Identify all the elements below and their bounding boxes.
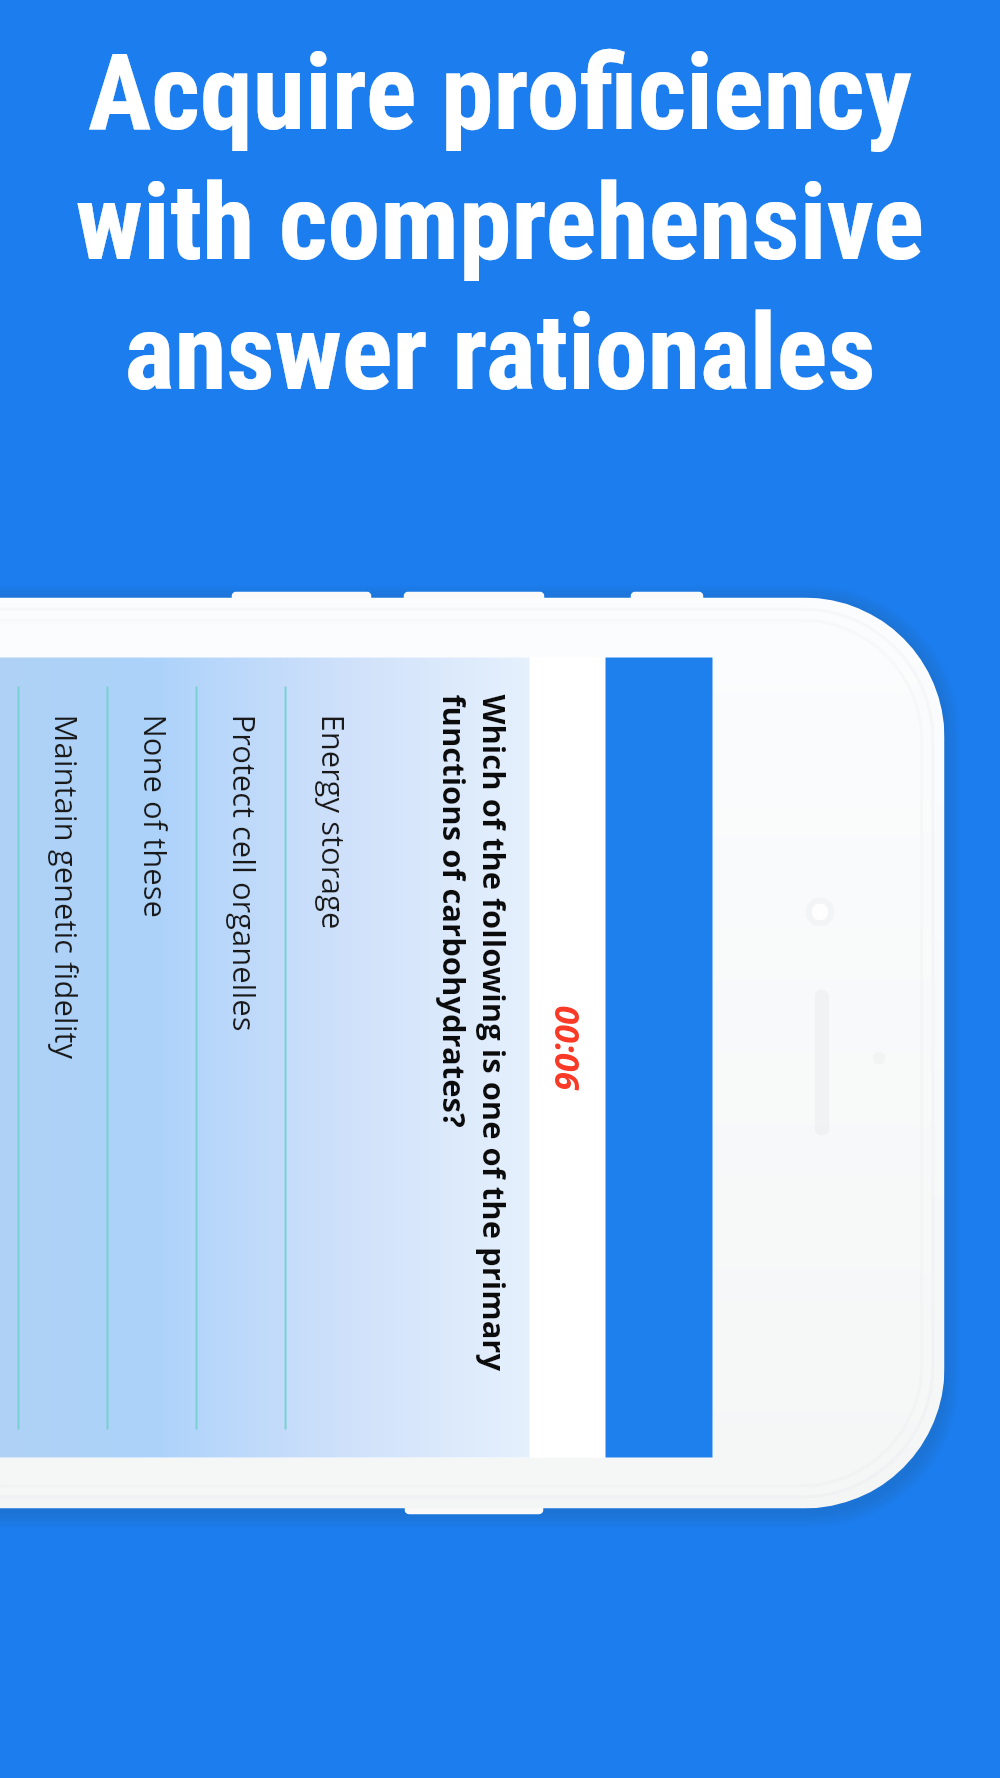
button[interactable]: Energy storage (285, 657, 374, 1457)
button[interactable]: None of these (107, 657, 196, 1457)
staticText: None of these (134, 714, 176, 918)
staticText: Protect cell organelles (223, 714, 265, 1031)
button[interactable]: Quiz toolbar (605, 657, 712, 1457)
staticText: Acquire proficiency with comprehensive a… (0, 31, 1000, 414)
staticText: 00:06 (544, 1005, 590, 1090)
button[interactable]: Maintain genetic fidelity (18, 657, 107, 1457)
button[interactable]: Protect cell organelles (196, 657, 285, 1457)
staticText: Energy storage (312, 714, 354, 929)
staticText: Which of the following is one of the pri… (433, 694, 515, 1394)
staticText: Maintain genetic fidelity (45, 714, 87, 1059)
